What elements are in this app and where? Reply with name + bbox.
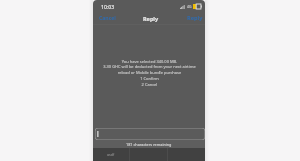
button[interactable]: Cancel (99, 15, 116, 22)
staticText: Reply (187, 14, 203, 22)
staticText: Reply (143, 15, 159, 22)
staticText: 181 characters remaining (126, 142, 172, 147)
button[interactable]: Suggestion 0 (93, 148, 129, 161)
button[interactable]: Reply (187, 14, 203, 22)
staticText: asdf (107, 152, 115, 157)
staticText: 10:03 (101, 3, 115, 10)
staticText: 4G (187, 4, 192, 9)
staticText: You have selected 340.00 MB. 3.30 GHC wi… (103, 59, 196, 88)
button[interactable] (95, 128, 205, 140)
staticText: Cancel (99, 15, 116, 22)
